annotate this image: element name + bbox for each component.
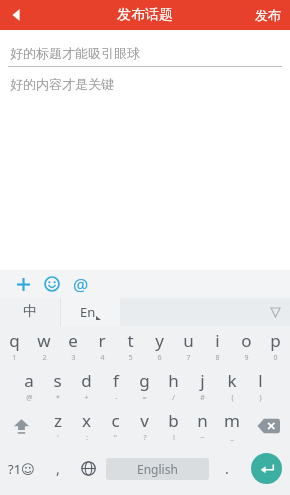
staticText: = (142, 393, 147, 403)
staticText: x (82, 409, 91, 432)
button[interactable]: 中 (0, 298, 60, 326)
button[interactable]: c (101, 406, 130, 446)
button[interactable]: x (72, 406, 101, 446)
button[interactable]: w (29, 326, 58, 366)
staticText: r (98, 329, 106, 352)
button[interactable]: i (203, 326, 232, 366)
staticText: 好的内容才是关键 (10, 76, 114, 92)
staticText: i (215, 329, 220, 352)
button[interactable]: z (43, 406, 72, 446)
button[interactable]: Change language (73, 446, 103, 491)
staticText: @ (73, 273, 89, 296)
button[interactable]: ?1☺ (0, 446, 43, 491)
staticText: # (200, 393, 205, 403)
staticText: t (127, 329, 134, 352)
staticText: l (258, 369, 263, 392)
button[interactable]: f (101, 366, 130, 406)
button[interactable]: a (14, 366, 43, 406)
staticText: ? (143, 433, 147, 443)
staticText: 发布 (255, 7, 281, 23)
button[interactable]: d (72, 366, 101, 406)
staticText: ?1☺ (8, 460, 35, 478)
staticText: v (140, 409, 149, 432)
staticText: s (53, 369, 62, 392)
staticText: c (111, 409, 120, 432)
button[interactable]: n (188, 406, 217, 446)
button[interactable]: Enter (242, 446, 290, 491)
staticText: * (56, 393, 60, 403)
button[interactable]: Mention (68, 271, 94, 297)
staticText: z (54, 409, 62, 432)
button[interactable]: g (130, 366, 159, 406)
staticText: 1 (12, 353, 17, 363)
staticText: ( (231, 393, 234, 403)
staticText: h (168, 369, 179, 392)
button[interactable]: v (130, 406, 159, 446)
staticText: e (68, 329, 78, 352)
staticText: @ (26, 393, 33, 403)
staticText: f (113, 369, 119, 392)
staticText: k (227, 369, 237, 392)
staticText: ' (57, 433, 59, 443)
button[interactable]: l (246, 366, 275, 406)
staticText: English (137, 461, 178, 477)
button[interactable]: Expand candidates (120, 298, 290, 326)
button[interactable]: 好的标题才能吸引眼球 (0, 39, 290, 66)
button[interactable]: t (116, 326, 145, 366)
staticText: ~ (200, 433, 205, 443)
button[interactable]: Add (10, 271, 36, 297)
staticText: 中 (23, 303, 37, 321)
staticText: . (225, 459, 229, 478)
staticText: 9 (244, 353, 249, 363)
button[interactable]: Emoji (39, 271, 65, 297)
staticText: 7 (186, 353, 191, 363)
button[interactable]: 发布 (246, 0, 290, 30)
staticText: m (224, 409, 240, 432)
button[interactable]: Backspace (246, 406, 290, 446)
button[interactable]: En (61, 298, 120, 326)
button[interactable]: English (106, 458, 209, 480)
button[interactable]: p (261, 326, 290, 366)
button[interactable]: Shift (0, 406, 43, 446)
staticText: o (241, 329, 252, 352)
staticText: 好的标题才能吸引眼球 (10, 45, 140, 61)
button[interactable]: k (217, 366, 246, 406)
staticText: " (114, 433, 117, 443)
other: Expand candidates (271, 308, 280, 317)
staticText: 4 (100, 353, 105, 363)
staticText: En (80, 303, 96, 321)
staticText: 发布话题 (117, 6, 173, 24)
button[interactable]: Back (0, 0, 34, 30)
button[interactable]: 好的内容才是关键 (0, 67, 290, 270)
staticText: 5 (128, 353, 133, 363)
staticText: j (200, 369, 205, 392)
button[interactable]: o (232, 326, 261, 366)
button[interactable]: r (87, 326, 116, 366)
button[interactable]: u (174, 326, 203, 366)
button[interactable]: h (159, 366, 188, 406)
staticText: y (155, 329, 164, 352)
staticText: / (172, 393, 175, 403)
button[interactable]: s (43, 366, 72, 406)
staticText: b (168, 409, 179, 432)
staticText: q (9, 329, 20, 352)
button[interactable]: q (0, 326, 29, 366)
staticText: - (115, 393, 118, 403)
button[interactable]: m (217, 406, 246, 446)
staticText: n (197, 409, 208, 432)
staticText: 3 (71, 353, 76, 363)
staticText: p (270, 329, 281, 352)
staticText: : (86, 433, 88, 443)
staticText: 6 (157, 353, 162, 363)
staticText: ) (259, 393, 262, 403)
button[interactable]: y (145, 326, 174, 366)
button[interactable]: , (43, 446, 73, 491)
button[interactable]: e (58, 326, 87, 366)
staticText: g (139, 369, 150, 392)
staticText: u (183, 329, 194, 352)
button[interactable]: j (188, 366, 217, 406)
button[interactable]: . (212, 446, 242, 491)
staticText: _ (230, 433, 234, 443)
button[interactable]: b (159, 406, 188, 446)
staticText: , (56, 459, 60, 478)
